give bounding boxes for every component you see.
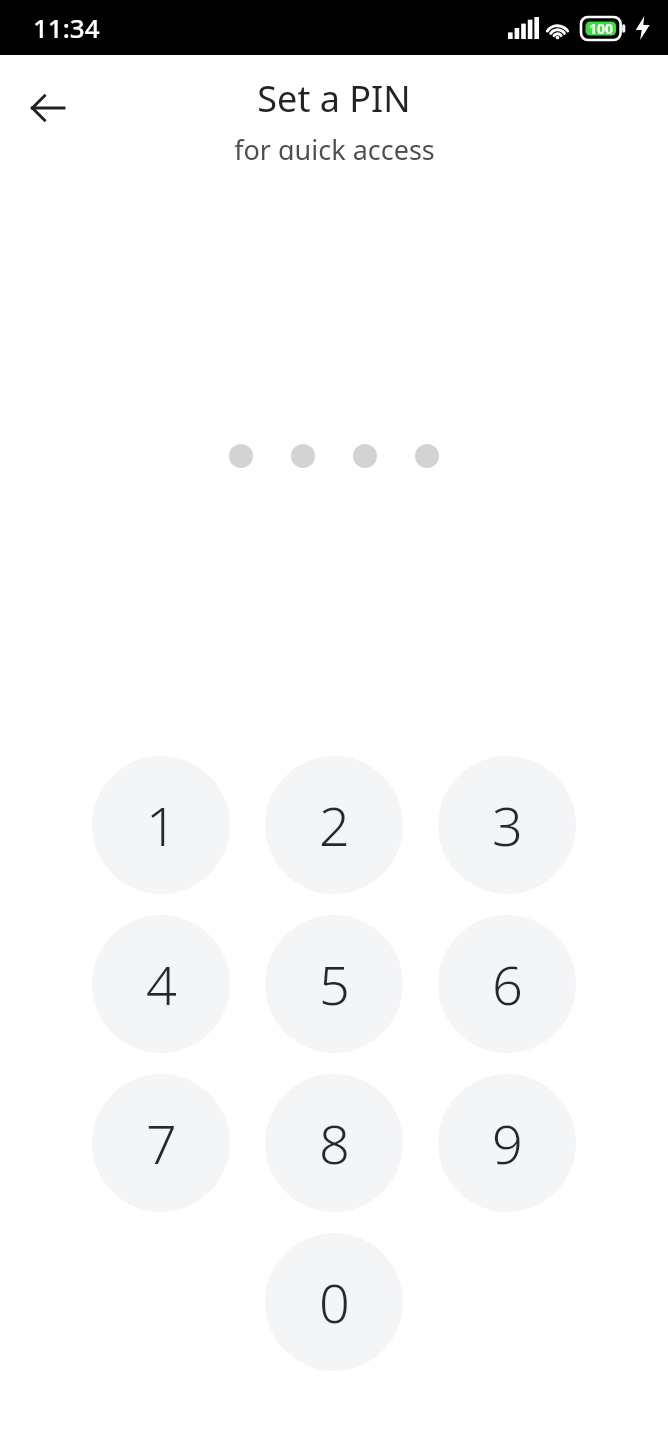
staticText: 3 [492, 788, 523, 862]
button[interactable]: 9 [438, 1074, 576, 1212]
staticText: 4 [146, 947, 177, 1021]
staticText: for quick access [234, 131, 435, 160]
staticText: 0 [319, 1265, 350, 1339]
button[interactable]: 5 [265, 915, 403, 1053]
staticText: 2 [319, 788, 350, 862]
button[interactable]: 0 [265, 1233, 403, 1371]
button[interactable]: 1 [92, 756, 230, 894]
staticText: 5 [319, 947, 350, 1021]
button[interactable]: 4 [92, 915, 230, 1053]
staticText: 8 [319, 1106, 350, 1180]
button[interactable]: 2 [265, 756, 403, 894]
staticText: 7 [146, 1106, 177, 1180]
staticText: 11:34 [33, 10, 100, 45]
button[interactable]: Back [14, 74, 82, 142]
staticText: 100 [589, 19, 614, 38]
staticText: 9 [492, 1106, 523, 1180]
button[interactable]: 7 [92, 1074, 230, 1212]
button[interactable]: 3 [438, 756, 576, 894]
button[interactable]: 6 [438, 915, 576, 1053]
button[interactable]: 8 [265, 1074, 403, 1212]
staticText: Set a PIN [257, 74, 411, 123]
staticText: 6 [492, 947, 523, 1021]
staticText: 1 [146, 788, 177, 862]
